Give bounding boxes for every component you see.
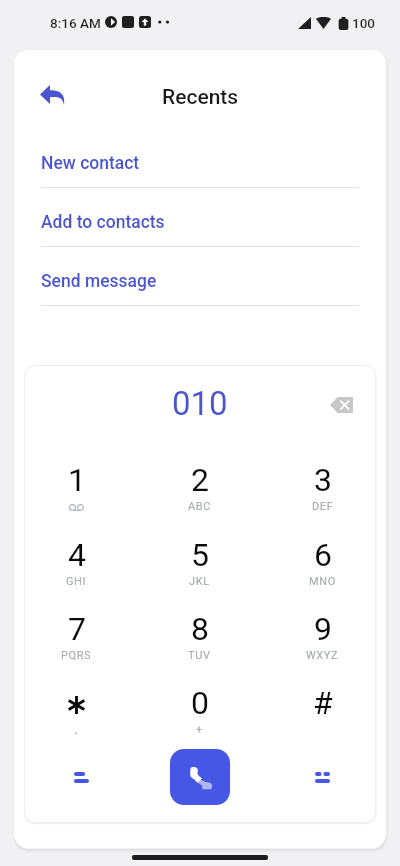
staticText: TUV xyxy=(188,649,211,662)
staticText: 8 xyxy=(191,610,209,648)
button[interactable]: New contact xyxy=(14,136,386,188)
staticText: New contact xyxy=(41,153,140,174)
button[interactable]: 6 xyxy=(261,536,376,602)
staticText: 9 xyxy=(314,610,332,648)
button[interactable]: 1 xyxy=(24,461,138,527)
staticText: 3 xyxy=(314,461,332,499)
staticText: DEF xyxy=(312,500,334,513)
button[interactable]: Send message xyxy=(14,254,386,306)
staticText: + xyxy=(196,723,203,736)
staticText: 7 xyxy=(68,610,86,648)
button[interactable]: Keypad xyxy=(289,749,355,805)
button[interactable]: 3 xyxy=(261,461,376,527)
staticText: Send message xyxy=(41,271,157,292)
staticText: 6 xyxy=(314,536,332,574)
staticText: 100 xyxy=(352,15,376,31)
staticText: , xyxy=(75,723,78,736)
button[interactable]: 0 xyxy=(138,684,261,750)
staticText: 1 xyxy=(68,461,86,499)
button[interactable]: Dialpad options xyxy=(48,749,114,805)
button[interactable]: Call xyxy=(170,749,230,805)
staticText: 4 xyxy=(68,536,86,574)
button[interactable]: 7 xyxy=(24,610,138,676)
button[interactable]: 9 xyxy=(261,610,376,676)
staticText: JKL xyxy=(189,575,210,588)
button[interactable]: 2 xyxy=(138,461,261,527)
button[interactable]: 5 xyxy=(138,536,261,602)
staticText: 5 xyxy=(191,536,209,574)
button[interactable]: , xyxy=(24,684,138,750)
button[interactable]: 4 xyxy=(24,536,138,602)
staticText: GHI xyxy=(66,575,87,588)
staticText: 8:16 AM xyxy=(50,15,101,31)
staticText: Add to contacts xyxy=(41,212,165,233)
staticText: ABC xyxy=(188,500,211,513)
staticText: 0 xyxy=(191,684,209,722)
staticText: PQRS xyxy=(61,649,92,662)
staticText: WXYZ xyxy=(306,649,339,662)
button[interactable]: # xyxy=(261,684,376,750)
button[interactable]: 8 xyxy=(138,610,261,676)
button[interactable]: Back xyxy=(26,68,78,120)
button[interactable]: Add to contacts xyxy=(14,195,386,247)
staticText: Recents xyxy=(162,85,239,110)
staticText: 2 xyxy=(191,461,209,499)
staticText: # xyxy=(313,684,333,722)
staticText: 010 xyxy=(172,384,228,423)
staticText: MNO xyxy=(309,575,336,588)
button[interactable]: Backspace xyxy=(318,382,364,428)
